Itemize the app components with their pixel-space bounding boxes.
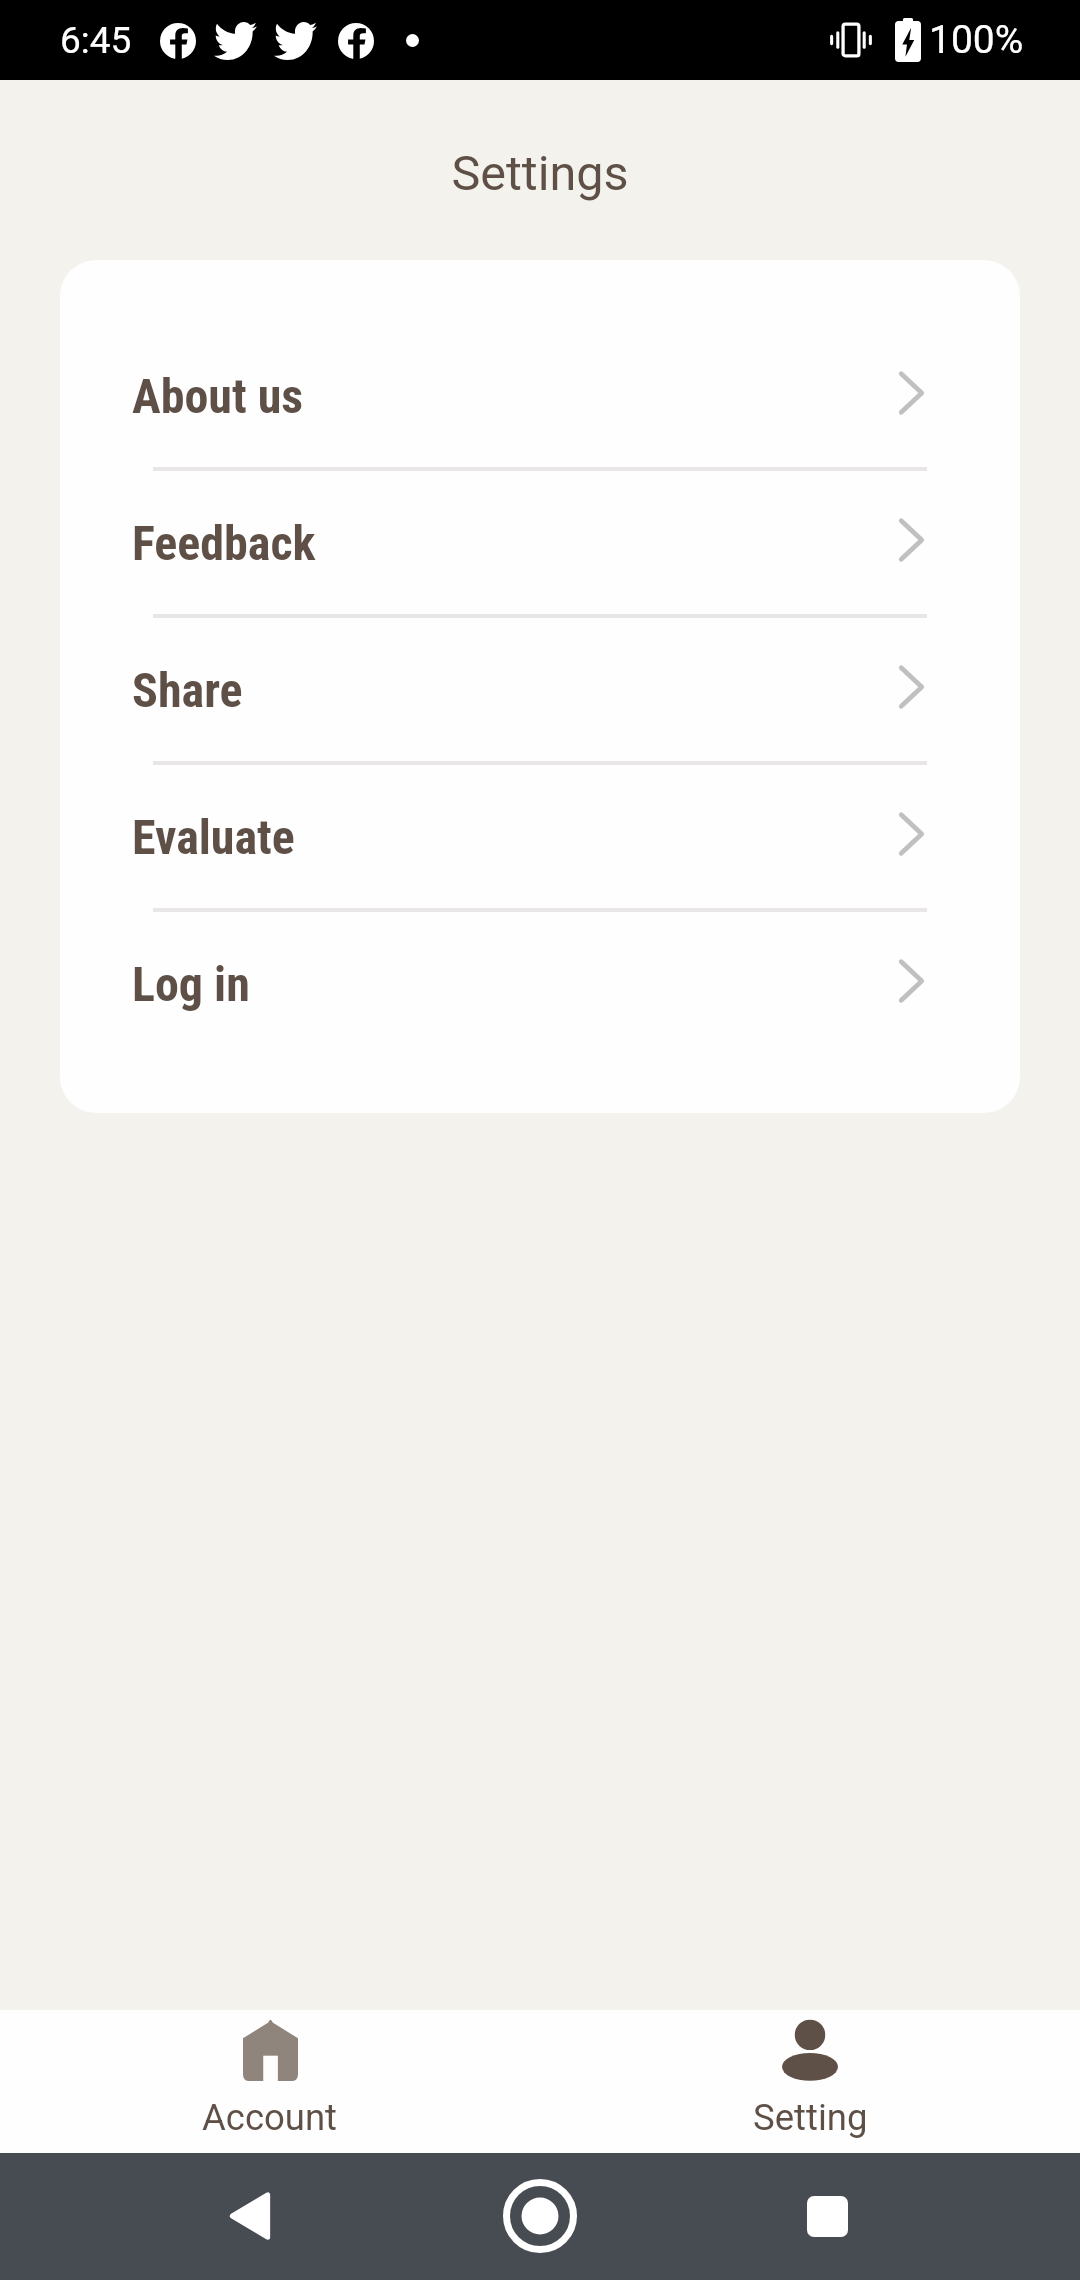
staticText: Settings bbox=[451, 145, 629, 202]
button[interactable]: Recents bbox=[782, 2171, 872, 2261]
button[interactable]: About us bbox=[60, 324, 1020, 467]
staticText: Setting bbox=[753, 2096, 868, 2139]
button[interactable]: Home bbox=[495, 2171, 585, 2261]
staticText: 100% bbox=[929, 17, 1024, 63]
staticText: About us bbox=[132, 368, 304, 424]
button[interactable]: Evaluate bbox=[60, 765, 1020, 908]
staticText: 6:45 bbox=[60, 19, 132, 62]
button[interactable]: Share bbox=[60, 618, 1020, 761]
staticText: Account bbox=[202, 2096, 338, 2139]
button[interactable]: Back bbox=[205, 2171, 295, 2261]
button[interactable]: Account bbox=[0, 2010, 540, 2139]
staticText: Share bbox=[132, 662, 243, 718]
staticText: Feedback bbox=[132, 515, 316, 571]
staticText: Evaluate bbox=[132, 809, 295, 865]
button[interactable]: Feedback bbox=[60, 471, 1020, 614]
staticText: Log in bbox=[132, 956, 250, 1012]
button[interactable]: Setting bbox=[540, 2010, 1080, 2139]
button[interactable]: Log in bbox=[60, 912, 1020, 1055]
